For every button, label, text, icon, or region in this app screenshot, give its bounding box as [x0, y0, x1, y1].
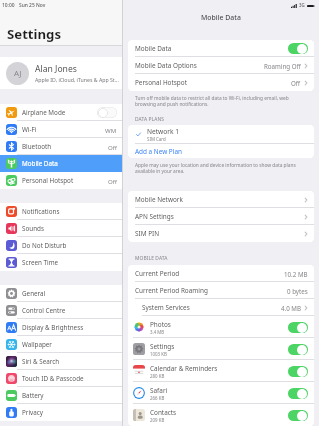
- staticText: Mobile Data: [22, 159, 58, 168]
- button[interactable]: Off: [97, 107, 117, 118]
- staticText: 4.0 MB: [281, 304, 301, 312]
- staticText: 280 KB: [150, 373, 165, 379]
- button[interactable]: Mobile Network: [128, 191, 314, 208]
- staticText: Sun 25 Nov: [19, 2, 46, 9]
- button[interactable]: Airplane Mode: [0, 104, 122, 121]
- button[interactable]: Touch ID & Passcode: [0, 370, 122, 387]
- staticText: General: [22, 289, 46, 298]
- button[interactable]: On: [288, 366, 308, 377]
- button[interactable]: Network 1: [128, 125, 314, 144]
- button[interactable]: Wi-Fi: [0, 121, 122, 138]
- button[interactable]: Add a New Plan: [128, 144, 314, 158]
- button[interactable]: Mobile Data Options: [128, 57, 314, 74]
- staticText: Display & Brightness: [22, 323, 84, 332]
- staticText: MOBILE DATA: [135, 255, 168, 262]
- staticText: 3G: [299, 2, 305, 8]
- staticText: Current Period: [135, 269, 180, 278]
- staticText: Personal Hotspot: [135, 78, 187, 87]
- button[interactable]: Bluetooth: [0, 138, 122, 155]
- button[interactable]: Contacts: [128, 404, 314, 426]
- staticText: Screen Time: [22, 258, 59, 267]
- staticText: 3.4 MB: [150, 329, 165, 335]
- staticText: Mobile Data Options: [135, 61, 197, 70]
- button[interactable]: General: [0, 285, 122, 302]
- staticText: Calendar & Reminders: [150, 364, 218, 373]
- button[interactable]: Display & Brightness: [0, 319, 122, 336]
- button[interactable]: Mobile Data: [0, 155, 122, 172]
- staticText: Contacts: [150, 408, 177, 417]
- staticText: Mobile Data: [201, 13, 241, 22]
- staticText: Wallpaper: [22, 340, 52, 349]
- staticText: DATA PLANS: [135, 116, 165, 123]
- staticText: Apple may use your location and device i…: [135, 162, 304, 174]
- staticText: Bluetooth: [22, 142, 52, 151]
- staticText: Turn off mobile data to restrict all dat…: [135, 95, 304, 107]
- staticText: Wi-Fi: [22, 125, 37, 134]
- button[interactable]: Personal Hotspot: [128, 74, 314, 91]
- staticText: Off: [108, 143, 117, 151]
- button[interactable]: Settings: [128, 338, 314, 360]
- button[interactable]: On: [288, 43, 308, 54]
- staticText: Mobile Network: [135, 195, 183, 204]
- button[interactable]: Notifications: [0, 203, 122, 220]
- staticText: Add a New Plan: [135, 147, 182, 156]
- staticText: 0 bytes: [287, 287, 308, 295]
- button[interactable]: Do Not Disturb: [0, 237, 122, 254]
- button[interactable]: SIM PIN: [128, 225, 314, 242]
- button[interactable]: On: [288, 388, 308, 399]
- staticText: 266 KB: [150, 395, 165, 401]
- button[interactable]: On: [288, 344, 308, 355]
- staticText: Alan Jones: [35, 63, 77, 75]
- staticText: Sounds: [22, 224, 44, 233]
- staticText: Mobile Data: [135, 44, 172, 53]
- staticText: 1003 KB: [150, 351, 167, 357]
- staticText: Airplane Mode: [22, 108, 66, 117]
- staticText: APN Settings: [135, 212, 174, 221]
- button[interactable]: Privacy: [0, 404, 122, 421]
- staticText: Roaming Off: [264, 62, 301, 70]
- button[interactable]: Mobile Data: [128, 40, 314, 57]
- button[interactable]: Current Period: [128, 265, 314, 282]
- staticText: WM: [105, 126, 117, 134]
- staticText: Touch ID & Passcode: [22, 374, 84, 383]
- staticText: Off: [291, 79, 301, 87]
- staticText: Off: [108, 177, 117, 185]
- staticText: System Services: [142, 303, 190, 312]
- button[interactable]: On: [288, 410, 308, 421]
- button[interactable]: Battery: [0, 387, 122, 404]
- button[interactable]: On: [288, 322, 308, 333]
- button[interactable]: Wallpaper: [0, 336, 122, 353]
- staticText: Settings: [7, 25, 62, 43]
- button[interactable]: APN Settings: [128, 208, 314, 225]
- staticText: Network 1: [147, 127, 180, 136]
- staticText: SIM Card: [147, 136, 166, 142]
- staticText: Current Period Roaming: [135, 286, 208, 295]
- staticText: Settings: [150, 342, 175, 351]
- staticText: Apple ID, iCloud, iTunes & App St...: [35, 76, 119, 83]
- button[interactable]: Control Centre: [0, 302, 122, 319]
- button[interactable]: Siri & Search: [0, 353, 122, 370]
- staticText: Photos: [150, 320, 171, 329]
- button[interactable]: Sounds: [0, 220, 122, 237]
- staticText: Privacy: [22, 408, 44, 417]
- staticText: Do Not Disturb: [22, 241, 67, 250]
- button[interactable]: Personal Hotspot: [0, 172, 122, 189]
- staticText: Safari: [150, 386, 168, 395]
- staticText: 209 KB: [150, 417, 165, 423]
- button[interactable]: System Services: [128, 299, 314, 316]
- button[interactable]: Screen Time: [0, 254, 122, 271]
- button[interactable]: AJ: [0, 57, 122, 89]
- button[interactable]: Safari: [128, 382, 314, 404]
- staticText: Siri & Search: [22, 357, 60, 366]
- button[interactable]: Calendar & Reminders: [128, 360, 314, 382]
- staticText: AJ: [14, 68, 22, 79]
- button[interactable]: Current Period Roaming: [128, 282, 314, 299]
- staticText: 10:00: [2, 2, 15, 9]
- button[interactable]: Photos: [128, 316, 314, 338]
- staticText: SIM PIN: [135, 229, 160, 238]
- staticText: Battery: [22, 391, 44, 400]
- staticText: Control Centre: [22, 306, 66, 315]
- staticText: Personal Hotspot: [22, 176, 74, 185]
- staticText: 10.2 MB: [284, 270, 308, 278]
- staticText: Notifications: [22, 207, 60, 216]
